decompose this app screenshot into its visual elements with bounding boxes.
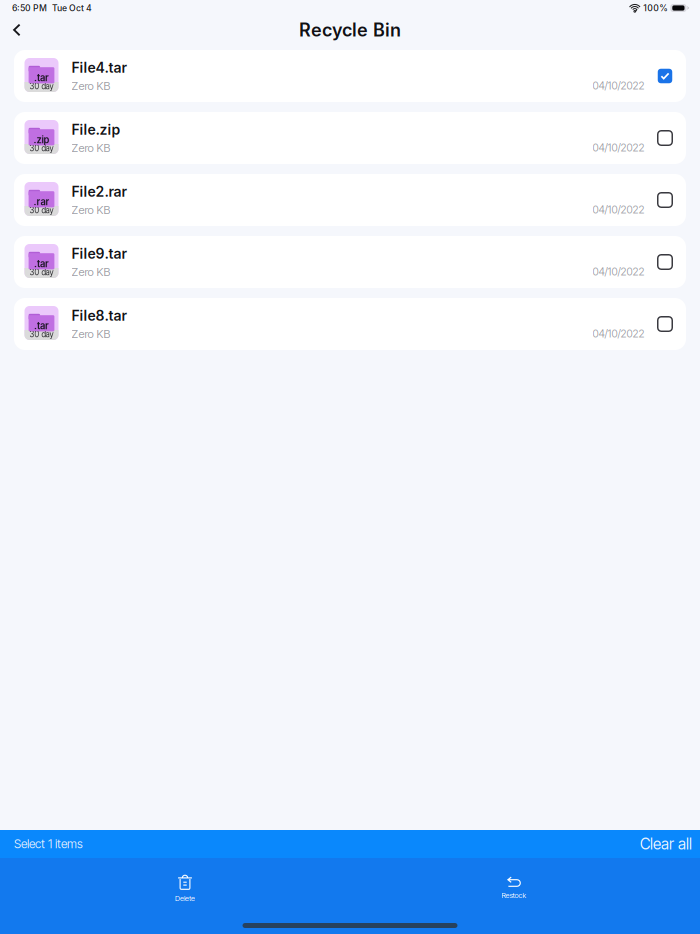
staticText: 30 day — [29, 329, 53, 339]
staticText: Zero KB — [71, 141, 110, 155]
staticText: 04/10/2022 — [592, 141, 644, 154]
staticText: 04/10/2022 — [592, 265, 644, 278]
button[interactable]: .zip — [14, 112, 686, 164]
staticText: Clear all — [640, 835, 692, 853]
staticText: Select 1 items — [14, 837, 83, 851]
staticText: 04/10/2022 — [592, 203, 644, 216]
button[interactable]: .rar — [14, 174, 686, 226]
button[interactable]: Delete — [157, 874, 213, 902]
staticText: 100% — [643, 3, 668, 13]
staticText: .tar — [34, 320, 49, 331]
staticText: 30 day — [29, 81, 53, 91]
staticText: Zero KB — [71, 327, 110, 341]
staticText: File9.tar — [71, 245, 127, 262]
button[interactable]: .tar — [14, 298, 686, 350]
button[interactable]: Clear all — [630, 831, 700, 857]
staticText: File4.tar — [71, 59, 127, 76]
staticText: Recycle Bin — [299, 19, 401, 41]
staticText: Restock — [501, 891, 526, 900]
staticText: 6:50 PM — [12, 3, 47, 13]
staticText: 30 day — [29, 143, 53, 153]
staticText: Zero KB — [71, 203, 110, 217]
staticText: Zero KB — [71, 265, 110, 279]
button[interactable]: Back — [4, 15, 30, 45]
button[interactable]: .tar — [14, 236, 686, 288]
staticText: .tar — [34, 72, 49, 83]
staticText: File8.tar — [71, 307, 127, 324]
staticText: Delete — [175, 894, 195, 903]
button[interactable]: Restock — [486, 874, 542, 902]
staticText: Tue Oct 4 — [52, 3, 92, 13]
staticText: 30 day — [29, 267, 53, 277]
staticText: .tar — [34, 258, 49, 269]
staticText: 04/10/2022 — [592, 79, 644, 92]
button[interactable]: .tar — [14, 50, 686, 102]
staticText: 04/10/2022 — [592, 327, 644, 340]
staticText: Zero KB — [71, 79, 110, 93]
staticText: .zip — [33, 134, 49, 145]
staticText: File2.rar — [71, 183, 127, 200]
staticText: .rar — [33, 196, 49, 207]
staticText: 30 day — [29, 205, 53, 215]
staticText: File.zip — [71, 121, 120, 138]
